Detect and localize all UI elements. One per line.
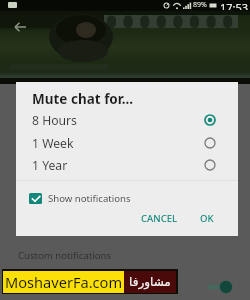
staticText: Custom notifications xyxy=(18,249,112,262)
staticText: مشاورفا xyxy=(129,275,171,289)
staticText: CANCEL xyxy=(141,212,178,224)
staticText: Mute chat for... xyxy=(32,90,134,108)
staticText: 17:53 xyxy=(220,0,249,10)
button[interactable]: CANCEL xyxy=(137,209,182,227)
staticText: 89% xyxy=(193,0,207,10)
staticText: Show notifications xyxy=(48,192,131,205)
button[interactable]: Custom notifications xyxy=(18,246,230,264)
staticText: MoshaverFa.com xyxy=(5,272,123,292)
other: Back xyxy=(14,22,27,32)
staticText: 8 Hours xyxy=(32,112,77,129)
button[interactable]: 1 Year xyxy=(16,155,238,175)
staticText: OK xyxy=(200,212,214,224)
staticText: 1 Week xyxy=(32,135,74,152)
button[interactable]: Toggle custom notifications xyxy=(205,280,235,293)
button[interactable]: 8 Hours xyxy=(16,110,238,130)
button[interactable]: 1 Week xyxy=(16,133,238,153)
staticText: 1 Year xyxy=(32,157,68,174)
button[interactable]: OK xyxy=(196,209,218,227)
button[interactable]: Show notifications xyxy=(16,188,238,208)
